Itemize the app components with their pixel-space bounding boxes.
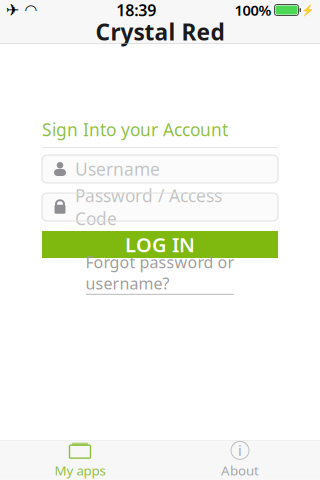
staticText: About <box>221 461 259 479</box>
staticText: LOG IN <box>125 231 195 258</box>
staticText: Password / Access Code <box>75 184 222 230</box>
staticText: ✈ <box>6 1 19 19</box>
button[interactable]: My apps <box>0 441 160 480</box>
staticText: ⚡ <box>301 4 314 16</box>
staticText: ◠ <box>24 2 37 18</box>
button[interactable]: LOG IN <box>42 231 278 258</box>
button[interactable]: Username <box>42 155 278 183</box>
staticText: Sign Into your Account <box>42 118 228 141</box>
button[interactable]: i <box>160 441 320 480</box>
staticText: Forgot password or username? <box>85 251 234 294</box>
staticText: i <box>238 441 242 460</box>
staticText: 100% <box>234 0 271 20</box>
staticText: Crystal Red <box>95 17 224 47</box>
staticText: My apps <box>54 461 105 479</box>
staticText: Username <box>75 157 160 180</box>
staticText: 18:39 <box>116 0 156 21</box>
button[interactable]: Password / Access Code <box>42 193 278 221</box>
button[interactable]: Forgot password or username? <box>42 263 278 283</box>
